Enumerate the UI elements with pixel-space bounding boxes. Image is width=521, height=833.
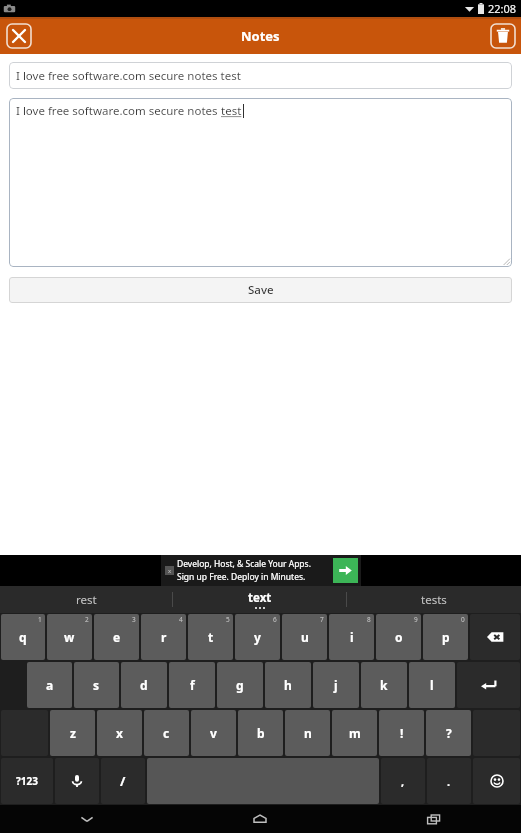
staticText: . <box>447 774 451 789</box>
button[interactable]: rest <box>0 586 173 613</box>
staticText: 1 <box>38 615 42 624</box>
staticText: I love free software.com secure notes <box>16 103 221 119</box>
button[interactable]: j <box>313 662 359 708</box>
button[interactable]: Close ad <box>165 566 174 575</box>
button[interactable]: Home <box>173 805 347 833</box>
button[interactable]: emoji <box>473 758 520 804</box>
button[interactable]: / <box>101 758 145 804</box>
staticText: i <box>350 629 354 645</box>
staticText: k <box>380 677 388 693</box>
button[interactable]: . <box>427 758 471 804</box>
staticText: n <box>304 725 312 741</box>
button[interactable]: I love free software.com secure notes <box>9 98 512 267</box>
staticText: d <box>140 677 148 693</box>
staticText: I love free software.com secure notes te… <box>16 68 241 84</box>
button[interactable]: l <box>409 662 455 708</box>
staticText: test <box>221 103 242 119</box>
staticText: j <box>334 677 338 693</box>
button[interactable]: , <box>381 758 425 804</box>
staticText: o <box>395 629 403 645</box>
button[interactable]: Close <box>4 21 33 50</box>
staticText: ?123 <box>16 774 38 788</box>
staticText: 7 <box>320 615 324 624</box>
button[interactable]: e <box>94 614 139 660</box>
staticText: x <box>168 567 172 575</box>
button[interactable]: w <box>47 614 92 660</box>
button[interactable]: u <box>282 614 327 660</box>
button[interactable]: o <box>376 614 421 660</box>
staticText: 22:08 <box>488 1 517 16</box>
button[interactable]: x <box>97 710 142 756</box>
staticText: tests <box>421 592 447 608</box>
button[interactable]: a <box>27 662 72 708</box>
staticText: h <box>284 677 292 693</box>
button[interactable]: s <box>74 662 119 708</box>
button[interactable]: m <box>332 710 377 756</box>
button[interactable]: d <box>121 662 167 708</box>
button[interactable]: f <box>169 662 215 708</box>
button[interactable]: c <box>144 710 189 756</box>
staticText: 2 <box>85 615 89 624</box>
button[interactable]: Recents <box>347 805 521 833</box>
button[interactable]: y <box>235 614 280 660</box>
button[interactable]: g <box>217 662 263 708</box>
staticText: t <box>208 629 214 645</box>
button[interactable]: Close ad <box>161 555 361 586</box>
staticText: v <box>210 725 217 741</box>
staticText: l <box>430 677 434 693</box>
button[interactable]: q <box>1 614 45 660</box>
button[interactable]: tests <box>347 586 521 613</box>
button[interactable]: ! <box>379 710 424 756</box>
button[interactable]: h <box>265 662 311 708</box>
button[interactable]: enter <box>457 662 520 708</box>
staticText: p <box>442 629 450 645</box>
staticText: 5 <box>226 615 230 624</box>
staticText: 9 <box>414 615 418 624</box>
button[interactable]: p <box>423 614 468 660</box>
button[interactable]: I love free software.com secure notes te… <box>9 62 512 89</box>
button[interactable]: z <box>50 710 95 756</box>
button[interactable]: Hide keyboard <box>0 805 173 833</box>
staticText: z <box>70 725 76 741</box>
staticText: q <box>19 629 27 645</box>
staticText: , <box>401 774 405 789</box>
staticText: Develop, Host, & Scale Your Apps. <box>177 558 311 570</box>
button[interactable]: b <box>238 710 283 756</box>
button[interactable]: ? <box>426 710 471 756</box>
staticText: text <box>248 590 272 606</box>
button[interactable]: text <box>173 586 347 613</box>
button[interactable]: Delete <box>488 21 517 50</box>
button[interactable]: backspace <box>470 614 520 660</box>
staticText: r <box>161 629 167 645</box>
staticText: Notes <box>241 27 280 45</box>
staticText: y <box>254 629 261 645</box>
button[interactable]: v <box>191 710 236 756</box>
staticText: rest <box>76 592 97 608</box>
button[interactable]: Go <box>333 558 358 583</box>
button[interactable]: i <box>329 614 374 660</box>
button[interactable]: r <box>141 614 186 660</box>
staticText: Save <box>248 282 274 298</box>
staticText: 4 <box>179 615 183 624</box>
staticText: c <box>163 725 170 741</box>
staticText: g <box>236 677 244 693</box>
button[interactable]: Save <box>9 277 512 303</box>
staticText: / <box>120 772 126 790</box>
staticText: 8 <box>367 615 371 624</box>
button[interactable]: mic <box>55 758 99 804</box>
button[interactable]: ?123 <box>1 758 53 804</box>
staticText: f <box>190 677 195 693</box>
staticText: ! <box>400 725 404 741</box>
staticText: e <box>113 629 121 645</box>
staticText: a <box>46 677 54 693</box>
staticText: x <box>116 725 123 741</box>
button[interactable]: n <box>285 710 330 756</box>
button[interactable]: k <box>361 662 407 708</box>
button[interactable]: t <box>188 614 233 660</box>
staticText: 3 <box>132 615 136 624</box>
staticText: s <box>93 677 100 693</box>
staticText: 0 <box>461 615 465 624</box>
